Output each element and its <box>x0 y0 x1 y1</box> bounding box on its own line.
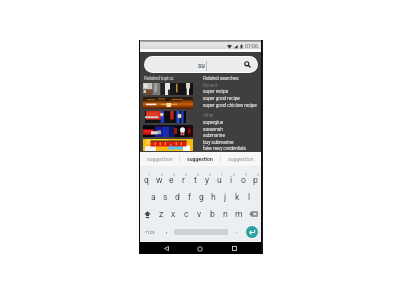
button[interactable]: ?123 <box>140 225 161 239</box>
staticText: Related searches: <box>203 76 240 82</box>
staticText: 1 <box>148 173 151 177</box>
button[interactable]: 4 <box>177 173 189 187</box>
button[interactable]: Related searches: <box>203 76 240 82</box>
staticText: x <box>171 209 176 219</box>
button[interactable]: super good recipe <box>203 96 240 102</box>
button[interactable]: 0 <box>249 173 261 187</box>
button[interactable] <box>143 97 193 109</box>
staticText: c <box>184 209 189 219</box>
staticText: 9 <box>245 173 248 177</box>
button[interactable]: s <box>159 190 171 204</box>
staticText: , <box>166 227 168 235</box>
staticText: super recipe <box>203 89 229 95</box>
button[interactable]: superglue <box>203 120 224 126</box>
staticText: 2 <box>161 173 164 177</box>
button[interactable]: . <box>231 225 242 239</box>
staticText: r <box>182 175 185 185</box>
button[interactable]: a <box>147 190 159 204</box>
staticText: e <box>169 175 174 185</box>
button[interactable]: l <box>243 190 255 204</box>
button[interactable]: m <box>232 207 245 221</box>
staticText: u <box>217 175 222 185</box>
button[interactable]: 8 <box>225 173 237 187</box>
staticText: q <box>144 175 149 185</box>
staticText: 3 <box>173 173 176 177</box>
button[interactable]: buy submarine <box>203 140 234 146</box>
button[interactable]: suggestion <box>221 152 261 166</box>
button[interactable]: super recipe <box>203 89 229 95</box>
button[interactable]: b <box>206 207 219 221</box>
staticText: Related topics: <box>144 76 175 82</box>
staticText: y <box>205 175 210 185</box>
button[interactable]: 3 <box>165 173 177 187</box>
staticText: f <box>188 192 191 202</box>
staticText: fake navy credentials <box>203 146 247 152</box>
staticText: other <box>203 113 214 119</box>
staticText: 5 <box>197 173 200 177</box>
button[interactable]: g <box>195 190 207 204</box>
staticText: h <box>211 192 216 202</box>
button[interactable]: suggestion <box>140 152 179 166</box>
button[interactable]: 1 <box>140 173 153 187</box>
button[interactable]: Shift <box>140 207 155 221</box>
staticText: suggestion <box>147 156 173 162</box>
button[interactable]: Enter <box>246 226 258 238</box>
button[interactable]: f <box>183 190 195 204</box>
staticText: 0 <box>257 173 260 177</box>
button[interactable]: savannah <box>203 127 223 133</box>
button[interactable]: z <box>155 207 167 221</box>
staticText: 8 <box>233 173 236 177</box>
staticText: super good chicken recipe <box>203 103 257 109</box>
staticText: s <box>163 192 168 202</box>
staticText: i <box>230 175 233 185</box>
staticText: ?123 <box>145 230 155 235</box>
button[interactable]: 7 <box>213 173 225 187</box>
staticText: j <box>224 192 227 202</box>
staticText: suggestion <box>187 156 213 162</box>
staticText: 4 <box>185 173 188 177</box>
staticText: submarine <box>203 133 225 139</box>
button[interactable]: 5 <box>189 173 201 187</box>
button[interactable]: super good chicken recipe <box>203 103 257 109</box>
button[interactable] <box>143 83 193 95</box>
button[interactable]: 2 <box>153 173 165 187</box>
button[interactable]: 6 <box>201 173 213 187</box>
staticText: 7 <box>221 173 224 177</box>
button[interactable]: Home <box>196 245 203 252</box>
staticText: g <box>199 192 204 202</box>
button[interactable]: other <box>203 113 214 119</box>
button[interactable]: d <box>171 190 183 204</box>
staticText: a <box>151 192 156 202</box>
button[interactable]: j <box>219 190 231 204</box>
button[interactable]: fake navy credentials <box>203 146 247 152</box>
button[interactable]: x <box>167 207 180 221</box>
button[interactable] <box>143 139 193 151</box>
button[interactable] <box>143 125 193 137</box>
button[interactable]: n <box>219 207 232 221</box>
staticText: o <box>241 175 246 185</box>
staticText: savannah <box>203 127 223 133</box>
button[interactable]: k <box>231 190 243 204</box>
button[interactable] <box>143 111 193 123</box>
button[interactable]: Recents <box>231 245 238 252</box>
button[interactable]: 9 <box>237 173 249 187</box>
staticText: n <box>223 209 228 219</box>
staticText: p <box>253 175 258 185</box>
button[interactable]: c <box>180 207 193 221</box>
staticText: super good recipe <box>203 96 240 102</box>
button[interactable]: Backspace <box>245 207 261 221</box>
staticText: . <box>236 227 238 235</box>
staticText: l <box>248 192 251 202</box>
button[interactable]: Recent <box>203 83 218 89</box>
button[interactable]: h <box>207 190 219 204</box>
staticText: superglue <box>203 120 224 126</box>
button[interactable]: suggestion <box>180 152 220 166</box>
staticText: m <box>235 209 243 219</box>
button[interactable]: Back <box>163 245 170 252</box>
button[interactable]: , <box>161 225 172 239</box>
button[interactable]: submarine <box>203 133 225 139</box>
button[interactable]: su <box>145 57 257 72</box>
button[interactable]: v <box>193 207 206 221</box>
staticText: t <box>194 175 197 185</box>
